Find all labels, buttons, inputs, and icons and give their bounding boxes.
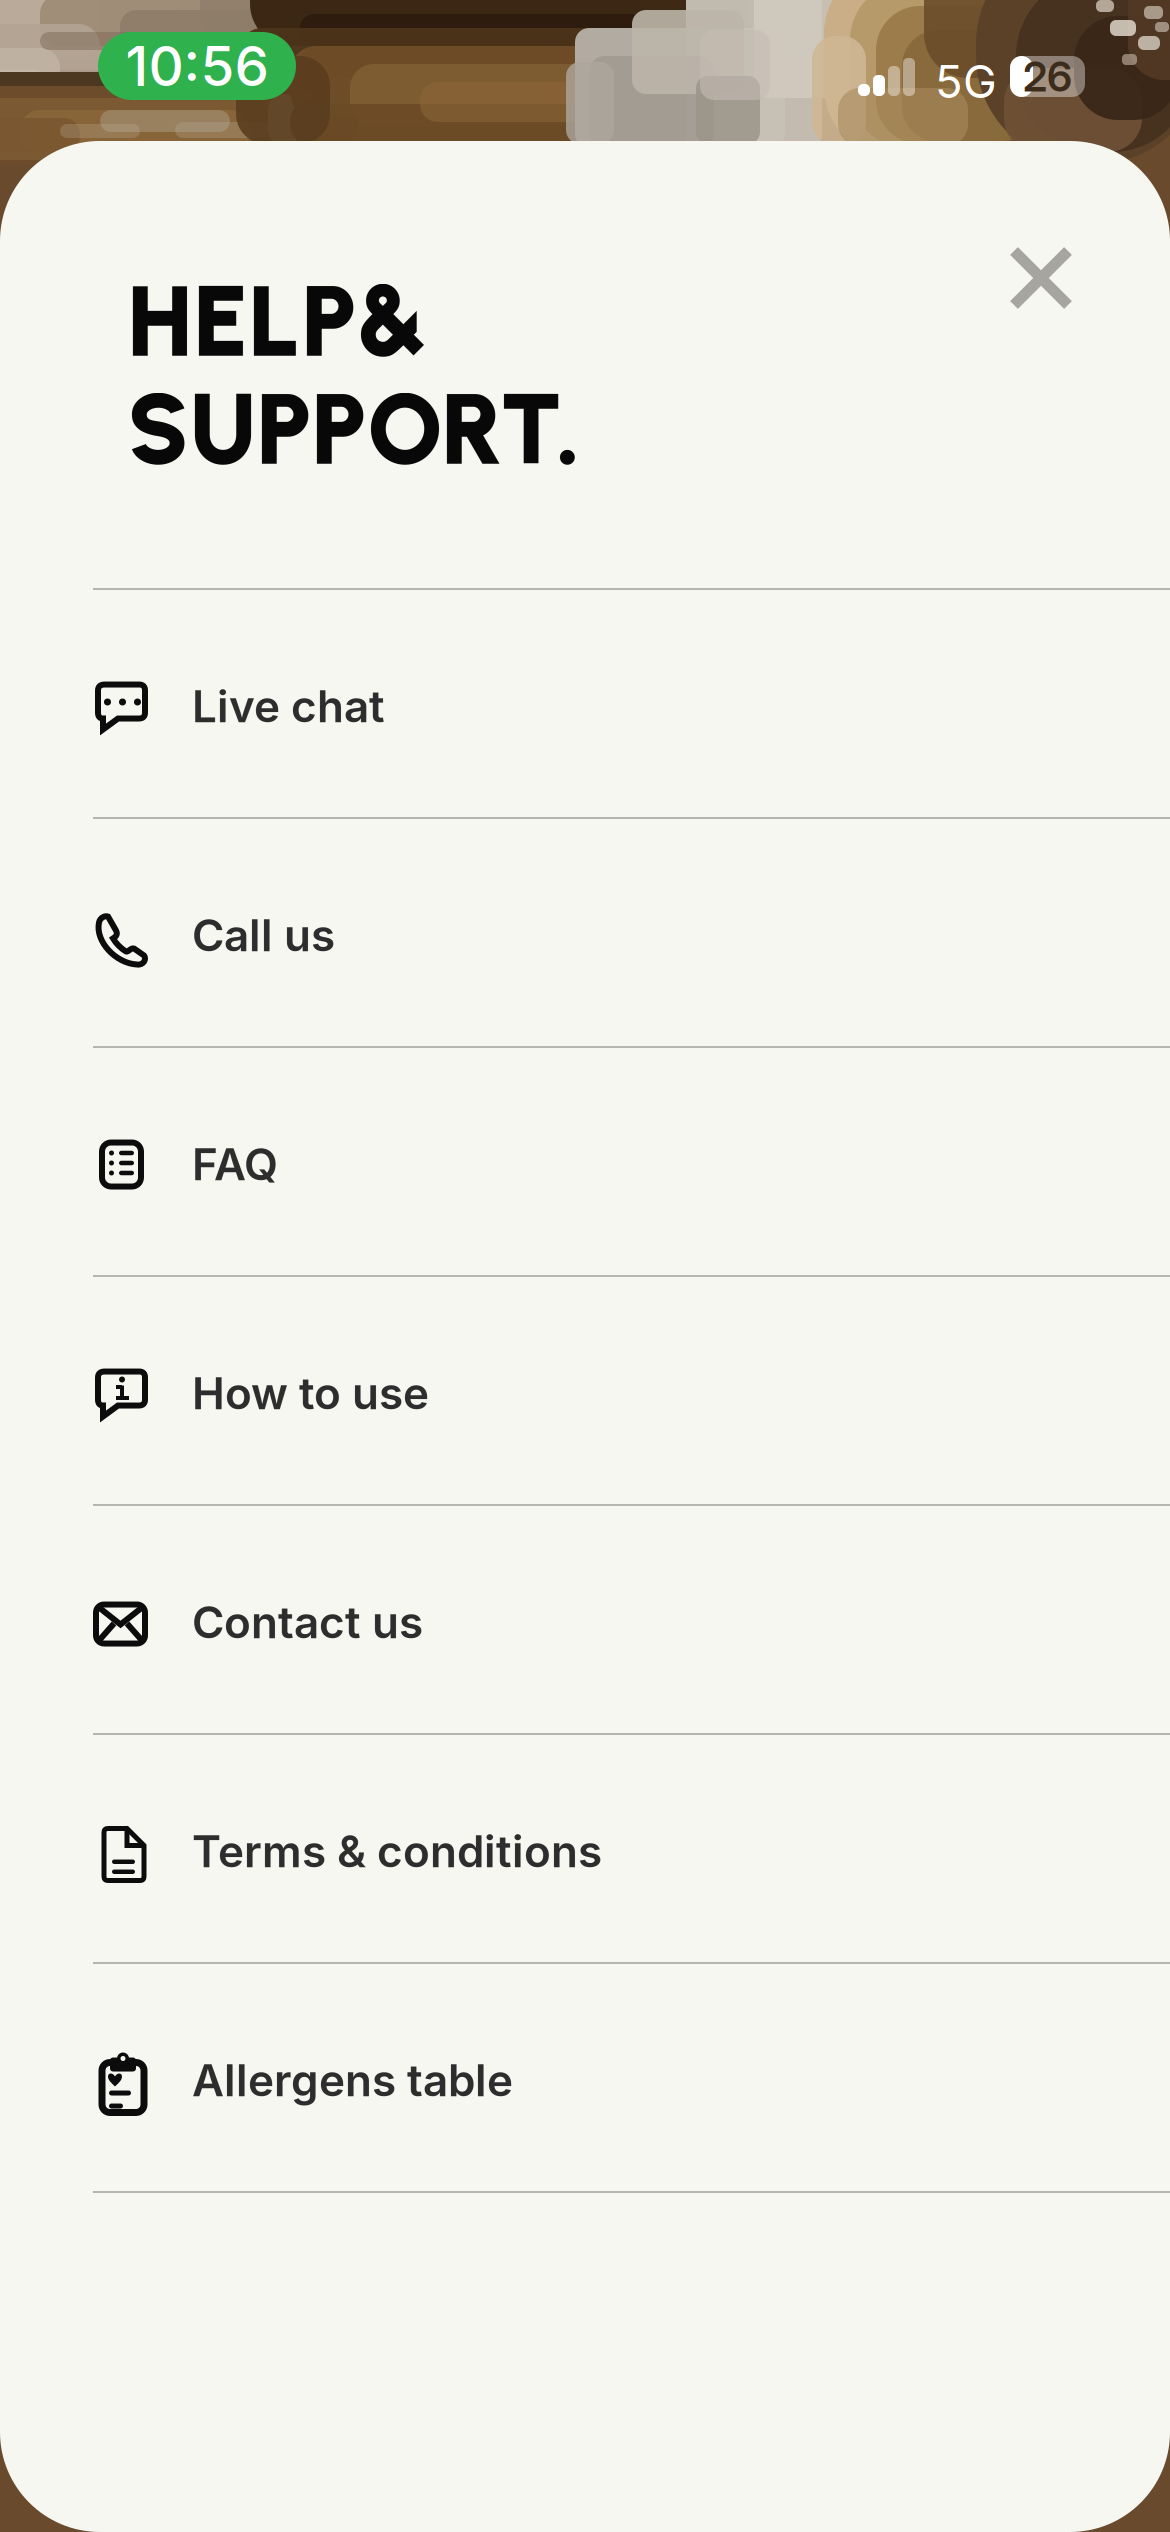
staticText: How to use (192, 1366, 429, 1420)
staticText: 26 (1023, 51, 1072, 101)
button[interactable]: Live chat (0, 588, 1170, 817)
staticText: Live chat (192, 679, 385, 733)
button[interactable]: Allergens table (0, 1962, 1170, 2191)
button[interactable]: FAQ (0, 1046, 1170, 1275)
button[interactable]: Close (990, 227, 1092, 329)
staticText: FAQ (192, 1137, 278, 1191)
staticText: 10:56 (125, 33, 268, 99)
button[interactable]: Contact us (0, 1504, 1170, 1733)
button[interactable]: How to use (0, 1275, 1170, 1504)
staticText: SUPPORT. (127, 370, 581, 488)
staticText: 5G (935, 54, 997, 109)
button[interactable]: Call us (0, 817, 1170, 1046)
staticText: Call us (192, 908, 335, 962)
staticText: Terms & conditions (192, 1824, 602, 1878)
button[interactable]: Terms & conditions (0, 1733, 1170, 1962)
staticText: HELP& (127, 262, 428, 380)
staticText: Contact us (192, 1595, 423, 1649)
staticText: Allergens table (192, 2053, 513, 2107)
